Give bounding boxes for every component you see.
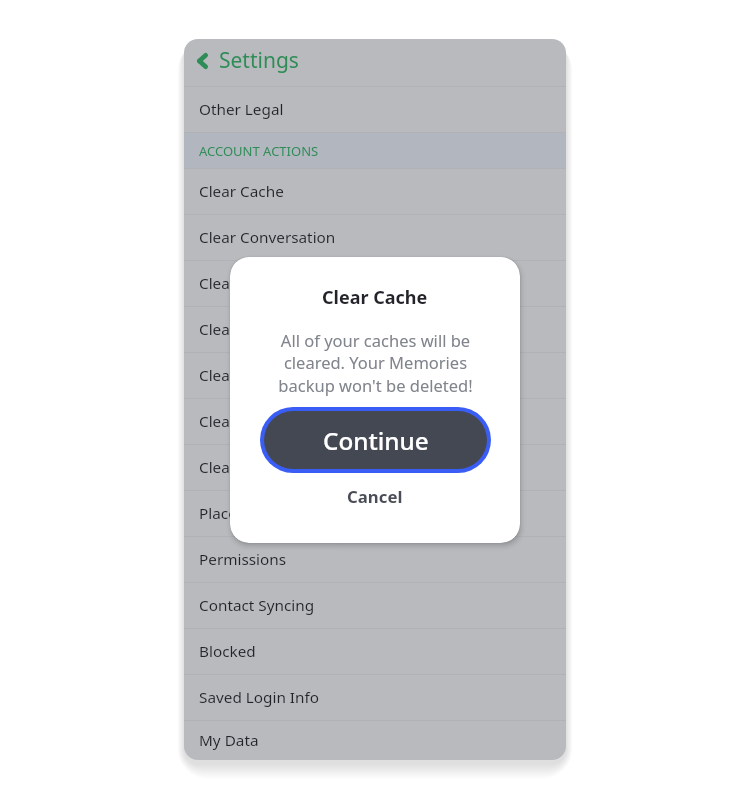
button[interactable]: Other Legal — [184, 87, 566, 132]
button[interactable]: Saved Login Info — [184, 675, 566, 720]
button[interactable]: My Data — [184, 721, 566, 760]
button[interactable]: Places Activity — [184, 491, 566, 536]
staticText: Settings — [219, 46, 299, 75]
staticText: ACCOUNT ACTIONS — [199, 142, 319, 160]
staticText: All of your caches will be cleared. Your… — [268, 329, 483, 396]
staticText: Continue — [323, 424, 429, 457]
staticText: Blocked — [199, 641, 256, 662]
button[interactable]: Clear Voice Scan Data — [184, 353, 566, 398]
staticText: Other Legal — [199, 99, 284, 120]
button[interactable]: Continue — [264, 411, 487, 469]
staticText: My Data — [199, 730, 259, 751]
button[interactable]: Permissions — [184, 537, 566, 582]
staticText: Permissions — [199, 549, 287, 570]
button[interactable]: Blocked — [184, 629, 566, 674]
staticText: Clear Top Locations — [199, 319, 339, 340]
staticText: Cancel — [347, 485, 403, 508]
button[interactable]: Clear Cameos Selfie — [184, 445, 566, 490]
button[interactable]: Back — [189, 48, 215, 74]
button[interactable]: Contact Syncing — [184, 583, 566, 628]
staticText: Clear Cache — [322, 285, 428, 310]
staticText: Clear Voice Scan Data — [199, 365, 354, 386]
staticText: Clear Cameos Selfie — [199, 457, 341, 478]
button[interactable]: Clear Conversation — [184, 215, 566, 260]
button[interactable]: Cancel — [329, 480, 421, 513]
staticText: Places Activity — [199, 503, 300, 524]
staticText: Clear Conversation — [199, 227, 336, 248]
button[interactable]: Clear Top Locations — [184, 307, 566, 352]
button[interactable]: Clear Cache — [184, 169, 566, 214]
staticText: Clear Search History — [199, 273, 345, 294]
button[interactable]: Clear Search History — [184, 261, 566, 306]
button[interactable]: Clear Sticker Search — [184, 399, 566, 444]
staticText: Contact Syncing — [199, 595, 315, 616]
staticText: Clear Cache — [199, 181, 284, 202]
staticText: Saved Login Info — [199, 687, 319, 708]
staticText: Clear Sticker Search — [199, 411, 341, 432]
